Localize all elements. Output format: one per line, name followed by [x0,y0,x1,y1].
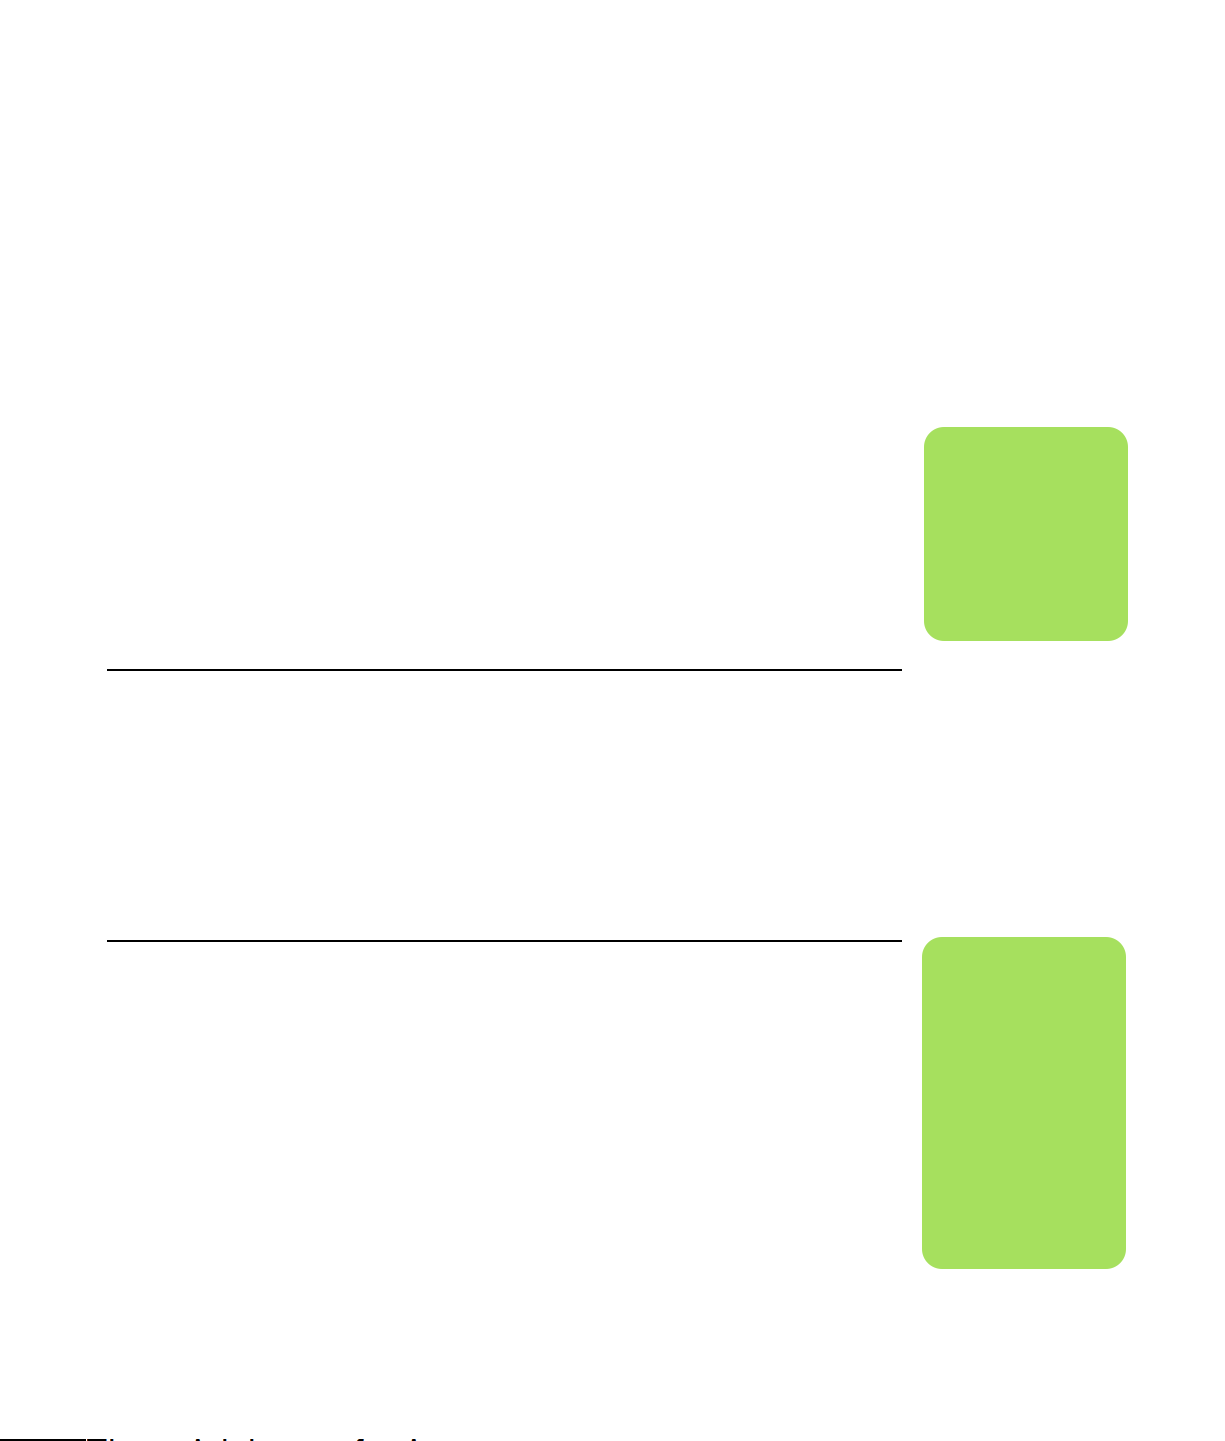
staticText: The quick brown fox jumps [86,1431,504,1441]
button[interactable]: Card two [922,937,1126,1269]
button[interactable]: Card one [924,427,1128,641]
button[interactable]: The quick brown fox jumps [0,0,1225,1441]
